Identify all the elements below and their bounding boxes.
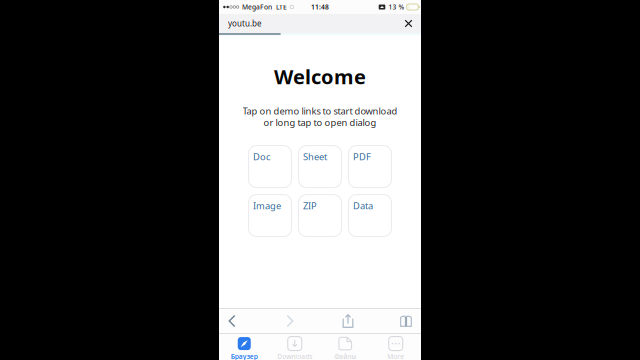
staticText: Data xyxy=(353,199,373,212)
staticText: Tap on demo links to start download xyxy=(242,105,397,117)
staticText: MegaFon xyxy=(242,3,272,11)
button[interactable]: Downloads xyxy=(269,334,320,360)
staticText: Файлы xyxy=(334,352,356,360)
button[interactable]: Stop loading xyxy=(397,13,419,33)
staticText: 13 % xyxy=(388,3,404,11)
staticText: Welcome xyxy=(274,63,366,90)
staticText: 11:48 xyxy=(311,3,329,11)
button[interactable]: Back xyxy=(219,309,245,333)
staticText: youtu.be xyxy=(228,18,262,29)
staticText: LTE xyxy=(276,3,287,11)
button[interactable]: ZIP xyxy=(298,194,341,236)
staticText: Doc xyxy=(253,150,270,163)
staticText: ZIP xyxy=(303,199,317,212)
button[interactable]: More xyxy=(370,334,421,360)
button[interactable]: Bookmarks xyxy=(393,309,419,333)
staticText: Sheet xyxy=(303,150,327,163)
button[interactable]: Doc xyxy=(248,145,291,187)
button[interactable]: Data xyxy=(348,194,391,236)
staticText: Image xyxy=(253,199,281,212)
button[interactable]: Forward xyxy=(277,309,303,333)
button[interactable]: Image xyxy=(248,194,291,236)
staticText: or long tap to open dialog xyxy=(263,116,376,129)
button[interactable]: Sheet xyxy=(298,145,341,187)
button[interactable]: Браузер xyxy=(219,334,269,360)
staticText: More xyxy=(387,352,404,360)
button[interactable]: Файлы xyxy=(320,334,370,360)
staticText: Браузер xyxy=(231,352,258,360)
staticText: PDF xyxy=(353,150,371,163)
staticText: Downloads xyxy=(277,352,312,360)
button[interactable]: Share xyxy=(335,309,361,333)
button[interactable]: PDF xyxy=(348,145,391,187)
